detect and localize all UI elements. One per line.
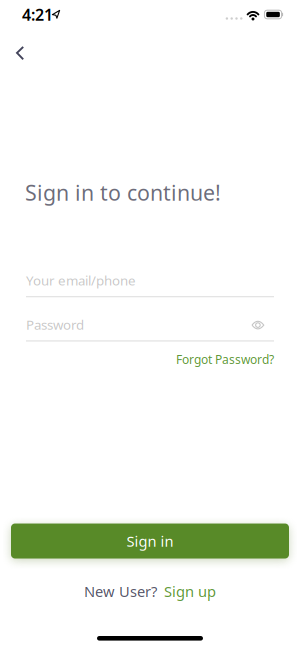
- button[interactable]: Sign in: [0, 523, 300, 558]
- button[interactable]: Show password: [251, 320, 274, 329]
- staticText: Sign up: [164, 581, 216, 601]
- staticText: 4:21: [22, 4, 53, 25]
- button[interactable]: Forgot Password?: [176, 351, 274, 367]
- staticText: Forgot Password?: [176, 351, 274, 367]
- button[interactable]: Sign up: [164, 581, 216, 601]
- staticText: Sign in: [126, 531, 173, 551]
- staticText: New User?: [84, 581, 157, 601]
- staticText: Your email/phone: [26, 271, 136, 289]
- staticText: Sign in to continue!: [25, 178, 221, 206]
- button[interactable]: Back: [0, 38, 42, 68]
- staticText: Password: [26, 316, 84, 333]
